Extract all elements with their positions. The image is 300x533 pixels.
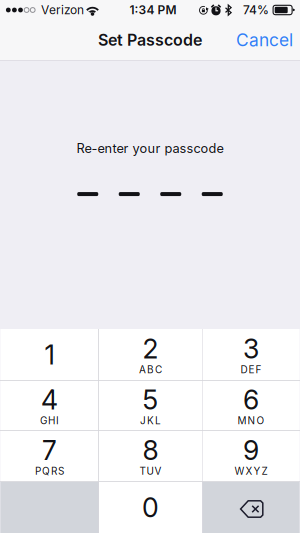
staticText: 9 [243, 434, 259, 466]
staticText: 2 [142, 333, 158, 365]
staticText: G H I [40, 415, 59, 427]
staticText: 7 [42, 434, 57, 466]
button[interactable]: 5 [99, 381, 202, 430]
staticText: J K L [140, 415, 161, 427]
staticText: M N O [238, 415, 265, 427]
staticText: 3 [243, 333, 259, 365]
button[interactable]: Delete [203, 482, 300, 533]
staticText: 1 [44, 339, 54, 371]
button[interactable]: 4 [0, 381, 98, 430]
staticText: Re-enter your passcode [76, 141, 223, 156]
button[interactable]: 3 [203, 329, 300, 380]
staticText: A B C [139, 364, 162, 376]
staticText: 6 [243, 384, 259, 416]
button[interactable]: 8 [99, 431, 202, 481]
button[interactable]: 6 [203, 381, 300, 430]
button[interactable]: 1 [0, 329, 98, 380]
button[interactable]: 7 [0, 431, 98, 481]
staticText: W X Y Z [235, 465, 268, 477]
staticText: 8 [142, 434, 158, 466]
staticText: D E F [241, 364, 262, 376]
button[interactable]: Cancel [220, 20, 300, 60]
staticText: 74% [243, 3, 269, 17]
staticText: 1:34 PM [129, 3, 176, 17]
staticText: 0 [142, 491, 159, 524]
staticText: 4 [41, 384, 58, 416]
staticText: T U V [139, 465, 161, 477]
staticText: Cancel [236, 29, 293, 50]
staticText: 5 [142, 384, 158, 416]
staticText: P Q R S [35, 465, 64, 477]
staticText: Set Passcode [98, 30, 202, 50]
staticText: Verizon [41, 3, 84, 17]
button[interactable]: 9 [203, 431, 300, 481]
button[interactable]: 0 [99, 482, 202, 533]
button[interactable]: 2 [99, 329, 202, 380]
